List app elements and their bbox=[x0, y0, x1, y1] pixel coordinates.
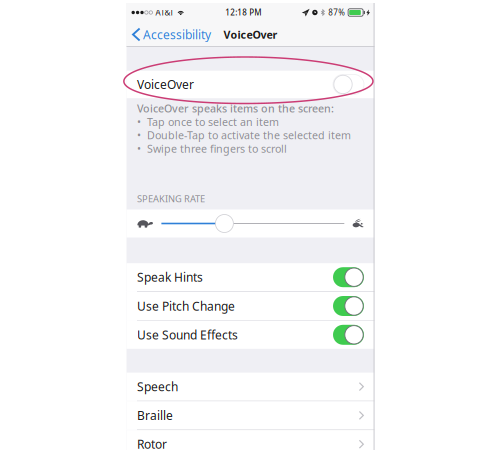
button[interactable]: Use Pitch Change bbox=[126, 292, 374, 320]
staticText: Speech bbox=[137, 379, 178, 394]
staticText: AT&T bbox=[155, 7, 173, 18]
staticText: VoiceOver bbox=[223, 27, 277, 42]
button[interactable]: Speak Hints bbox=[126, 263, 374, 291]
staticText: Braille bbox=[137, 407, 173, 423]
button[interactable]: Accessibility bbox=[126, 22, 215, 47]
staticText: Speak Hints bbox=[137, 269, 203, 285]
button[interactable]: Rotor bbox=[126, 430, 374, 450]
staticText: • Swipe three fingers to scroll bbox=[137, 141, 287, 156]
button[interactable]: Braille bbox=[126, 401, 374, 429]
staticText: VoiceOver speaks items on the screen: bbox=[137, 101, 334, 116]
staticText: 87% bbox=[328, 7, 345, 18]
staticText: VoiceOver bbox=[137, 76, 194, 92]
button[interactable]: Speech bbox=[126, 373, 374, 401]
button[interactable]: Use Sound Effects bbox=[126, 321, 374, 349]
staticText: Accessibility bbox=[143, 26, 211, 42]
staticText: Use Pitch Change bbox=[137, 298, 235, 314]
staticText: • Tap once to select an item bbox=[137, 115, 279, 129]
staticText: • Double-Tap to activate the selected it… bbox=[137, 128, 351, 142]
staticText: Rotor bbox=[137, 436, 167, 450]
staticText: Use Sound Effects bbox=[137, 327, 238, 343]
staticText: SPEAKING RATE bbox=[137, 192, 205, 205]
staticText: 12:18 PM bbox=[225, 7, 261, 18]
button[interactable]: VoiceOver bbox=[126, 71, 374, 98]
